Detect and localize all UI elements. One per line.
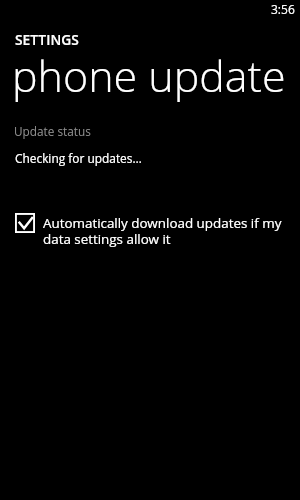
staticText: phone update: [12, 46, 286, 105]
staticText: Automatically download updates if my dat…: [43, 214, 290, 248]
button[interactable]: Automatically download updates if my dat…: [0, 210, 300, 254]
staticText: Update status: [14, 123, 91, 139]
button[interactable]: Clock: [271, 1, 295, 17]
staticText: SETTINGS: [15, 30, 79, 49]
staticText: Checking for updates…: [15, 150, 142, 166]
staticText: 3:56: [271, 1, 295, 17]
